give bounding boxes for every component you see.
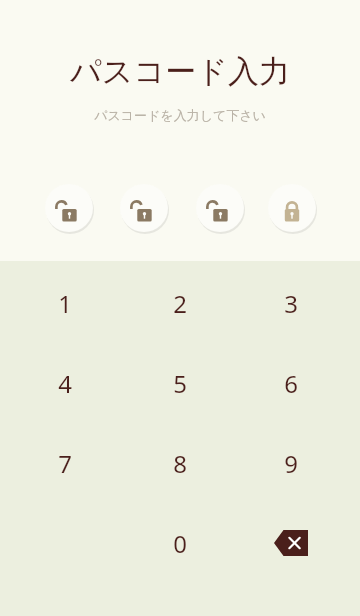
- staticText: 2: [173, 287, 187, 320]
- staticText: 9: [284, 447, 298, 480]
- button[interactable]: 8: [142, 433, 218, 493]
- button[interactable]: 4: [27, 353, 103, 413]
- staticText: 6: [284, 367, 298, 400]
- staticText: 4: [58, 367, 72, 400]
- staticText: パスコード入力: [70, 52, 290, 91]
- staticText: 1: [58, 287, 72, 320]
- staticText: 5: [173, 367, 187, 400]
- button[interactable]: 5: [142, 353, 218, 413]
- staticText: 0: [173, 527, 187, 560]
- button[interactable]: 9: [253, 433, 329, 493]
- button[interactable]: 0: [142, 513, 218, 573]
- staticText: 8: [173, 447, 187, 480]
- button[interactable]: 2: [142, 273, 218, 333]
- staticText: 3: [284, 287, 298, 320]
- button[interactable]: Delete: [253, 513, 329, 573]
- staticText: 7: [58, 447, 72, 480]
- button[interactable]: 3: [253, 273, 329, 333]
- button[interactable]: 7: [27, 433, 103, 493]
- button[interactable]: 6: [253, 353, 329, 413]
- staticText: パスコードを入力して下さい: [94, 107, 266, 123]
- button[interactable]: 1: [27, 273, 103, 333]
